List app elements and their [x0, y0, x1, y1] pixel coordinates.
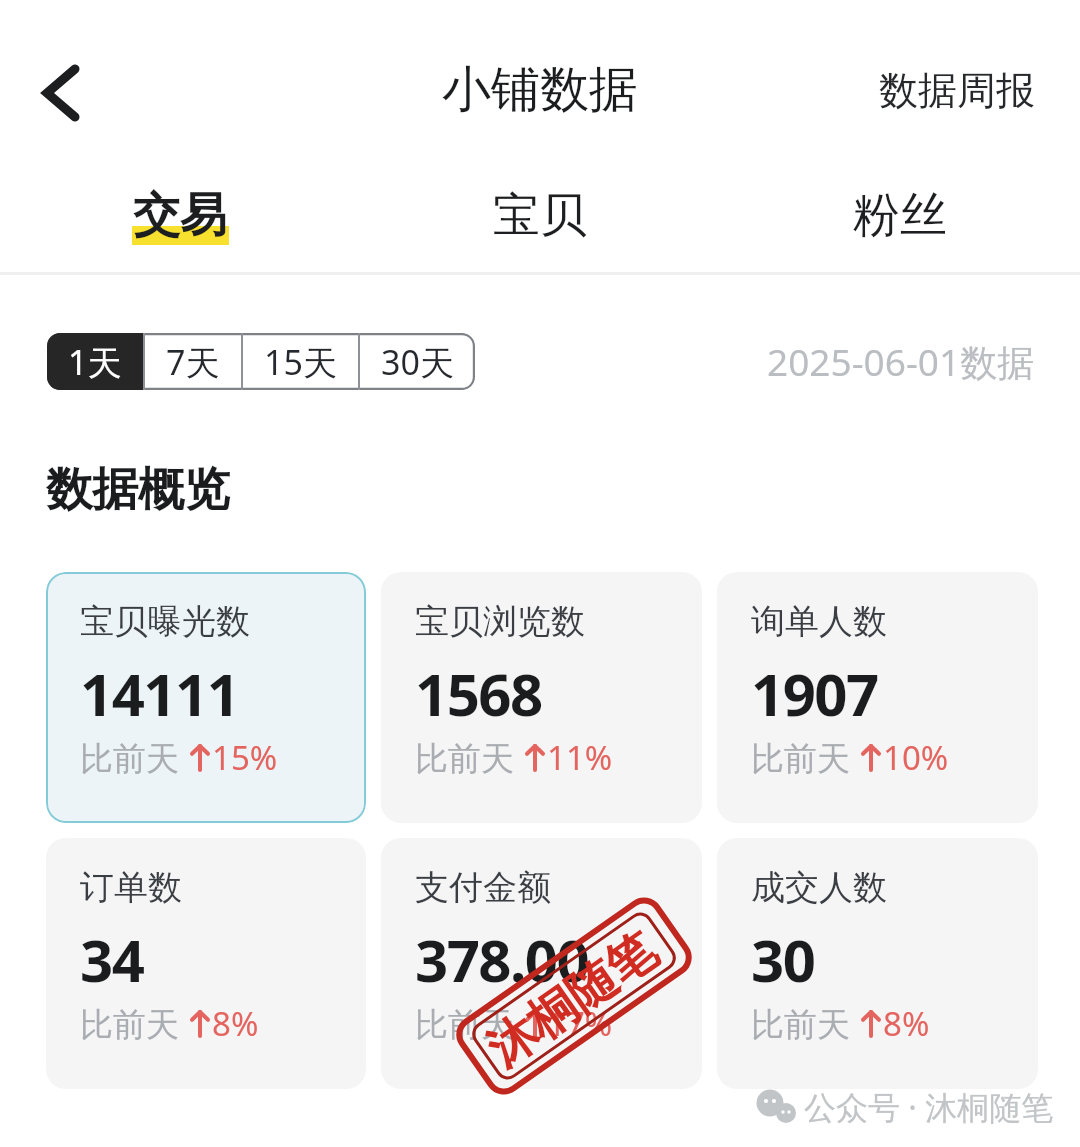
staticText: 378.00 — [415, 920, 589, 999]
button[interactable]: 30天 — [360, 333, 475, 390]
staticText: 比前天 — [751, 1001, 859, 1046]
staticText: 沐桐随笔 — [476, 920, 668, 1080]
staticText: 14111 — [80, 654, 239, 733]
staticText: 17% — [547, 1001, 613, 1046]
staticText: 比前天 — [80, 1001, 188, 1046]
staticText: 粉丝 — [853, 186, 947, 245]
staticText: 交易 — [133, 186, 227, 245]
staticText: 比前天 — [80, 735, 188, 780]
staticText: 宝贝曝光数 — [80, 600, 250, 643]
staticText: 1907 — [751, 654, 878, 733]
button[interactable]: 交易 — [0, 170, 360, 260]
staticText: 1天 — [68, 339, 122, 385]
button[interactable]: 15天 — [243, 333, 358, 390]
staticText: 小铺数据 — [442, 59, 638, 121]
staticText: 34 — [80, 920, 144, 999]
button[interactable]: 7天 — [145, 333, 241, 390]
button[interactable]: Back — [26, 58, 96, 128]
staticText: 8% — [883, 1001, 930, 1046]
staticText: 2025-06-01数据 — [767, 336, 1035, 387]
staticText: 宝贝 — [493, 186, 587, 245]
button[interactable]: 询单人数 — [717, 572, 1038, 823]
staticText: 比前天 — [751, 735, 859, 780]
button[interactable]: 宝贝曝光数 — [46, 572, 366, 823]
staticText: 30 — [751, 920, 815, 999]
staticText: 比前天 — [415, 735, 523, 780]
staticText: 支付金额 — [415, 866, 551, 909]
staticText: 11% — [547, 735, 613, 780]
button[interactable]: 粉丝 — [720, 170, 1080, 260]
staticText: 数据概览 — [46, 461, 230, 519]
staticText: 10% — [883, 735, 949, 780]
button[interactable]: 1天 — [47, 333, 143, 390]
staticText: 1568 — [415, 654, 542, 733]
staticText: 7天 — [166, 339, 220, 385]
button[interactable]: 订单数 — [46, 838, 366, 1089]
staticText: 8% — [212, 1001, 259, 1046]
staticText: 订单数 — [80, 866, 182, 909]
staticText: 15% — [212, 735, 278, 780]
staticText: 公众号 · 沐桐随笔 — [804, 1085, 1054, 1129]
button[interactable]: 成交人数 — [717, 838, 1038, 1089]
staticText: 询单人数 — [751, 600, 887, 643]
button[interactable]: 数据周报 — [855, 48, 1059, 133]
staticText: 数据周报 — [879, 66, 1035, 115]
staticText: 比前天 — [415, 1001, 523, 1046]
button[interactable]: 宝贝 — [360, 170, 720, 260]
button[interactable]: 支付金额 — [381, 838, 702, 1089]
staticText: 宝贝浏览数 — [415, 600, 585, 643]
staticText: 成交人数 — [751, 866, 887, 909]
staticText: 15天 — [264, 339, 337, 385]
button[interactable]: 宝贝浏览数 — [381, 572, 702, 823]
staticText: 30天 — [381, 339, 454, 385]
